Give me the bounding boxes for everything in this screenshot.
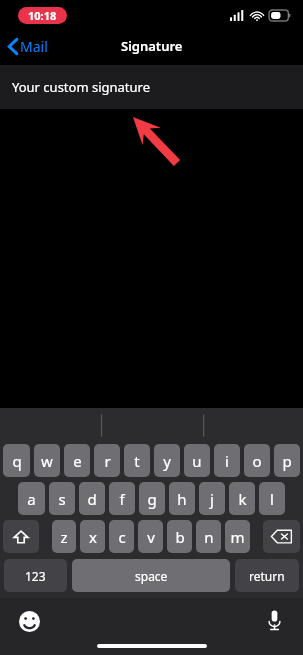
button[interactable]: Shift: [3, 520, 39, 553]
staticText: Your custom signature: [12, 78, 151, 96]
other: Backspace: [271, 529, 292, 544]
staticText: x: [89, 527, 97, 547]
button[interactable]: Dictate: [261, 607, 287, 633]
button[interactable]: q: [3, 444, 30, 477]
staticText: t: [134, 451, 140, 471]
staticText: p: [282, 451, 292, 471]
staticText: r: [104, 451, 111, 471]
button[interactable]: Backspace: [263, 520, 300, 553]
button[interactable]: u: [184, 444, 210, 477]
button[interactable]: v: [138, 520, 163, 553]
button[interactable]: z: [52, 520, 76, 553]
staticText: space: [135, 568, 168, 584]
button[interactable]: f: [109, 482, 135, 515]
staticText: n: [204, 527, 214, 547]
staticText: v: [147, 527, 155, 547]
staticText: e: [73, 451, 82, 471]
button[interactable]: m: [225, 520, 250, 553]
staticText: w: [41, 451, 53, 471]
button[interactable]: j: [199, 482, 225, 515]
button[interactable]: c: [109, 520, 134, 553]
staticText: 10:18: [28, 8, 57, 23]
button[interactable]: return: [235, 559, 299, 592]
button[interactable]: n: [196, 520, 221, 553]
staticText: 123: [25, 568, 46, 584]
staticText: d: [87, 489, 97, 509]
button[interactable]: 123: [4, 559, 67, 592]
staticText: j: [210, 489, 214, 509]
button[interactable]: g: [139, 482, 165, 515]
button[interactable]: x: [80, 520, 105, 553]
button[interactable]: k: [229, 482, 255, 515]
button[interactable]: p: [274, 444, 300, 477]
button[interactable]: Your custom signature: [0, 65, 303, 109]
staticText: Mail: [20, 37, 48, 56]
button[interactable]: b: [167, 520, 192, 553]
button[interactable]: e: [64, 444, 90, 477]
button[interactable]: y: [154, 444, 180, 477]
staticText: m: [230, 527, 245, 547]
staticText: z: [60, 527, 68, 547]
button[interactable]: w: [34, 444, 60, 477]
button[interactable]: l: [259, 482, 285, 515]
staticText: u: [192, 451, 202, 471]
button[interactable]: t: [124, 444, 150, 477]
staticText: l: [270, 489, 274, 509]
button[interactable]: Emoji: [16, 608, 42, 634]
staticText: q: [12, 451, 22, 471]
button[interactable]: o: [244, 444, 270, 477]
staticText: return: [249, 568, 285, 584]
button[interactable]: space: [72, 559, 230, 592]
staticText: i: [225, 451, 229, 471]
staticText: f: [119, 489, 125, 509]
staticText: b: [175, 527, 185, 547]
staticText: y: [163, 451, 171, 471]
button[interactable]: d: [79, 482, 105, 515]
staticText: k: [238, 489, 247, 509]
button[interactable]: i: [214, 444, 240, 477]
staticText: c: [118, 527, 126, 547]
button[interactable]: s: [49, 482, 75, 515]
button[interactable]: Mail: [0, 33, 56, 60]
staticText: h: [177, 489, 187, 509]
button[interactable]: r: [94, 444, 120, 477]
staticText: g: [147, 489, 157, 509]
other: Shift: [13, 529, 29, 545]
staticText: s: [58, 489, 66, 509]
button[interactable]: a: [18, 482, 45, 515]
button[interactable]: h: [169, 482, 195, 515]
staticText: Signature: [121, 37, 183, 55]
staticText: o: [252, 451, 262, 471]
staticText: a: [27, 489, 36, 509]
